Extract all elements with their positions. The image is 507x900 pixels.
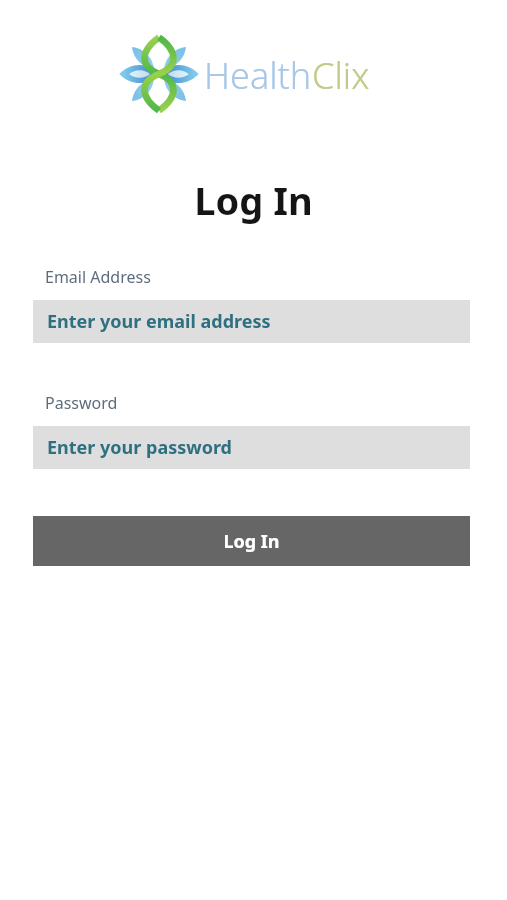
button[interactable]: Enter your password: [33, 426, 470, 469]
staticText: Email Address: [45, 266, 151, 288]
staticText: Log In: [194, 174, 313, 226]
staticText: Log In: [223, 529, 280, 554]
button[interactable]: Log In: [33, 516, 470, 566]
staticText: Enter your email address: [47, 309, 271, 334]
staticText: Password: [45, 392, 118, 414]
staticText: Clix: [312, 51, 370, 100]
staticText: Health: [204, 51, 312, 100]
button[interactable]: Enter your email address: [33, 300, 470, 343]
other: HealthClix logo: [120, 35, 198, 113]
staticText: Enter your password: [47, 435, 232, 460]
